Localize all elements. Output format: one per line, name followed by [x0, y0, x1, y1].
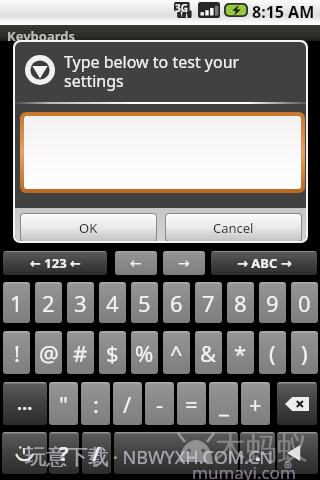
- staticText: 0: [298, 288, 311, 318]
- staticText: OK: [79, 219, 98, 237]
- button[interactable]: +: [241, 382, 270, 425]
- staticText: (: [269, 338, 276, 368]
- staticText: · NBWYXH.COM.CN: [113, 445, 274, 470]
- button[interactable]: Previous: [115, 251, 157, 275]
- staticText: 3: [74, 288, 87, 318]
- button[interactable]: ← 123 ←: [3, 251, 107, 275]
- button[interactable]: !: [3, 331, 30, 374]
- button[interactable]: …: [3, 382, 47, 425]
- button[interactable]: ?: [49, 432, 79, 474]
- button[interactable]: ": [49, 382, 78, 425]
- button[interactable]: 0: [291, 282, 318, 323]
- staticText: $: [106, 338, 119, 368]
- button[interactable]: ^: [163, 331, 190, 374]
- button[interactable]: 6: [163, 282, 190, 323]
- button[interactable]: Enter: [277, 432, 318, 474]
- button[interactable]: 4: [99, 282, 126, 323]
- staticText: ): [301, 338, 308, 368]
- staticText: 1: [10, 288, 23, 318]
- staticText: &: [200, 338, 217, 368]
- button[interactable]: _: [209, 382, 238, 425]
- staticText: 7: [202, 288, 215, 318]
- staticText: 3G: [175, 1, 188, 15]
- staticText: 6: [170, 288, 183, 318]
- staticText: +: [249, 389, 262, 419]
- staticText: Keyboards: [7, 27, 75, 43]
- staticText: 木蚂蚁: [215, 429, 308, 468]
- staticText: .: [255, 440, 261, 467]
- button[interactable]: Emoticons: [2, 432, 47, 474]
- staticText: →: [178, 255, 190, 271]
- staticText: ": [59, 389, 68, 419]
- button[interactable]: [24, 116, 301, 189]
- staticText: #: [73, 338, 88, 368]
- staticText: ← 123 ←: [30, 254, 81, 272]
- button[interactable]: #: [67, 331, 94, 374]
- button[interactable]: @: [35, 331, 62, 374]
- button[interactable]: 9: [259, 282, 286, 323]
- staticText: …: [17, 391, 33, 416]
- button[interactable]: %: [131, 331, 158, 374]
- staticText: -: [156, 389, 164, 419]
- staticText: /: [123, 389, 132, 419]
- button[interactable]: 2: [35, 282, 62, 323]
- staticText: Type below to test your settings: [64, 51, 294, 92]
- staticText: !: [14, 338, 20, 368]
- staticText: _: [219, 389, 229, 419]
- button[interactable]: Next: [163, 251, 205, 275]
- button[interactable]: Space: [114, 432, 238, 474]
- staticText: 9: [266, 288, 279, 318]
- button[interactable]: Backspace: [277, 382, 317, 425]
- staticText: → ABC →: [237, 254, 292, 272]
- staticText: 玩意下载: [25, 444, 109, 470]
- button[interactable]: → ABC →: [211, 251, 317, 275]
- button[interactable]: =: [177, 382, 206, 425]
- button[interactable]: /: [82, 432, 111, 474]
- staticText: ←: [130, 255, 142, 271]
- staticText: 4: [106, 288, 119, 318]
- staticText: ?: [59, 440, 69, 467]
- button[interactable]: ): [291, 331, 318, 374]
- staticText: /: [92, 440, 101, 467]
- button[interactable]: 3: [67, 282, 94, 323]
- staticText: :: [93, 389, 99, 419]
- button[interactable]: 8: [227, 282, 254, 323]
- staticText: mumayi.com: [192, 461, 296, 480]
- staticText: %: [135, 338, 154, 368]
- button[interactable]: 1: [3, 282, 30, 323]
- staticText: 2: [42, 288, 55, 318]
- button[interactable]: (: [259, 331, 286, 374]
- staticText: ^: [170, 338, 183, 368]
- button[interactable]: :: [81, 382, 110, 425]
- staticText: =: [185, 389, 198, 419]
- staticText: *: [234, 338, 247, 368]
- button[interactable]: *: [227, 331, 254, 374]
- staticText: 5: [138, 288, 151, 318]
- button[interactable]: $: [99, 331, 126, 374]
- button[interactable]: 7: [195, 282, 222, 323]
- button[interactable]: 5: [131, 282, 158, 323]
- button[interactable]: -: [145, 382, 174, 425]
- button[interactable]: .: [240, 432, 275, 474]
- button[interactable]: /: [113, 382, 142, 425]
- button[interactable]: &: [195, 331, 222, 374]
- staticText: 8:15 AM: [252, 1, 315, 23]
- staticText: @: [39, 338, 59, 368]
- button[interactable]: OK: [21, 214, 156, 241]
- staticText: 8: [234, 288, 247, 318]
- staticText: Cancel: [213, 219, 254, 237]
- button[interactable]: Cancel: [166, 214, 301, 241]
